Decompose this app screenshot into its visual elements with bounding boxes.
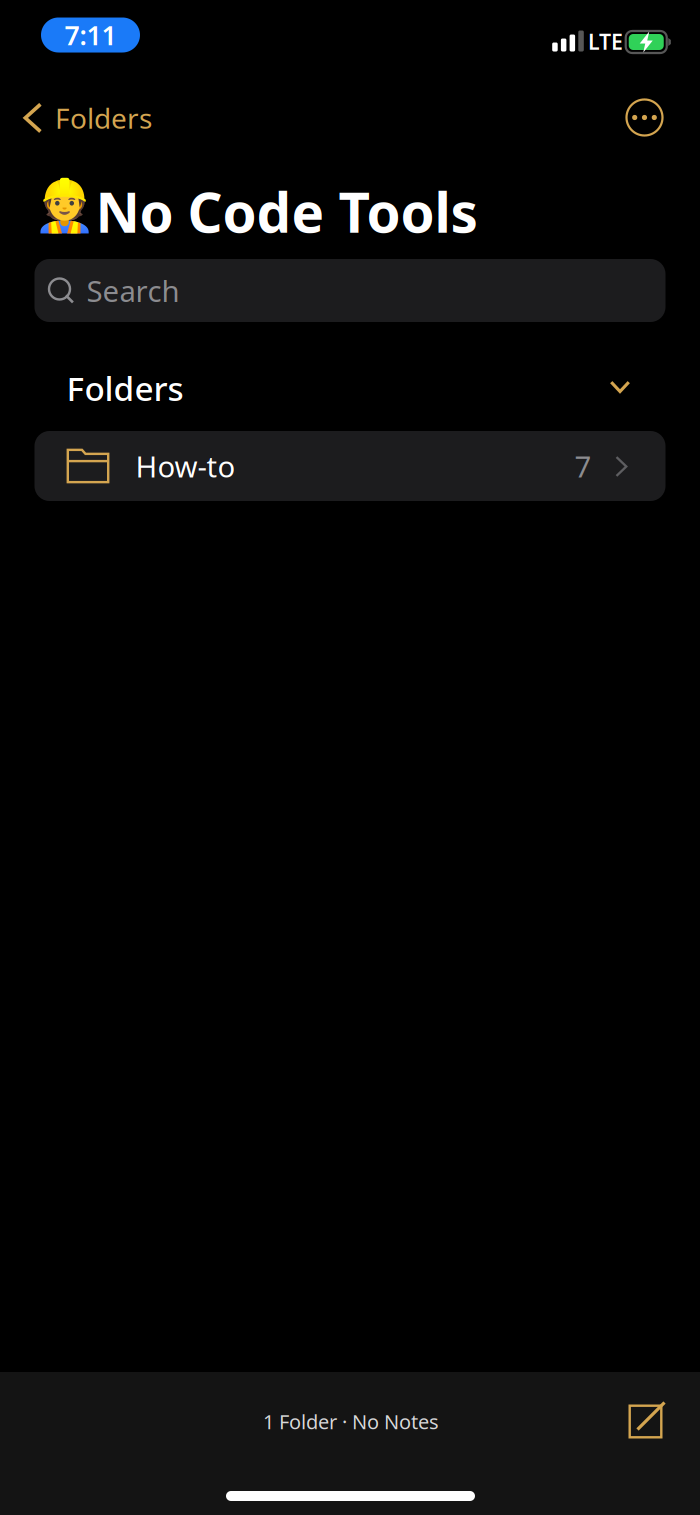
staticText: How-to <box>135 446 235 485</box>
staticText: Search <box>86 271 179 310</box>
button[interactable]: How-to <box>34 431 665 501</box>
button[interactable]: Back to Folders <box>21 88 149 148</box>
staticText: 7:11 <box>64 17 116 53</box>
button[interactable]: Search <box>34 259 665 322</box>
staticText: LTE <box>588 27 623 56</box>
staticText: Folders <box>66 366 183 410</box>
staticText: No Code Tools <box>95 175 477 248</box>
staticText: Folders <box>55 99 152 137</box>
button[interactable]: Collapse Folders <box>587 362 653 413</box>
button[interactable]: More options <box>617 90 671 144</box>
staticText: 👷 <box>33 177 96 234</box>
staticText: 1 Folder · No Notes <box>263 1408 439 1435</box>
button[interactable]: New Note <box>621 1397 669 1445</box>
staticText: 7 <box>574 446 591 485</box>
